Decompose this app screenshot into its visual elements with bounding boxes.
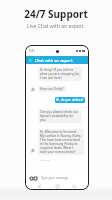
staticText: Live Chat with an expert. xyxy=(0,23,112,30)
button[interactable]: Attach xyxy=(34,177,37,180)
staticText: How can I help? xyxy=(40,87,64,91)
button[interactable]: Home xyxy=(54,183,61,189)
staticText: what you are shopping for, xyxy=(40,72,80,76)
button[interactable]: Hi, Welcome to Serviced. xyxy=(38,129,84,155)
button[interactable]: Hi there! If you tell me xyxy=(38,67,82,81)
button[interactable]: Emoji xyxy=(30,177,33,180)
staticText: 24/7 Support xyxy=(0,7,112,21)
staticText: supplied deals. What I xyxy=(40,146,74,150)
staticText: you. xyxy=(40,118,47,122)
staticText: Hi there! If you tell me xyxy=(40,68,74,72)
staticText: Chat with an expert xyxy=(35,58,73,63)
staticText: Can you please check our xyxy=(40,110,79,114)
staticText: I can ask here! xyxy=(40,76,62,80)
staticText: took your name please? xyxy=(40,150,76,154)
button[interactable]: Back xyxy=(26,56,88,64)
staticText: This have been researched xyxy=(40,138,80,142)
staticText: Hi, do you deliver? xyxy=(56,98,84,102)
staticText: 9:41 xyxy=(29,49,35,53)
button[interactable]: Recents xyxy=(71,183,78,189)
button[interactable]: Hi, do you deliver? xyxy=(55,97,85,103)
button[interactable]: Can you please check our xyxy=(38,109,81,123)
staticText: layout's availability for xyxy=(40,114,74,118)
staticText: Type your message xyxy=(41,176,69,180)
staticText: My surface is Nuong. Nuha. xyxy=(40,134,82,138)
button[interactable]: How can I help? xyxy=(38,86,66,92)
button[interactable]: Back xyxy=(36,183,43,189)
staticText: Hi, Welcome to Serviced. xyxy=(40,130,77,134)
staticText: 10:24 AM xyxy=(39,158,50,161)
other: Back xyxy=(29,59,32,62)
staticText: in the Samsung Products xyxy=(40,142,78,146)
